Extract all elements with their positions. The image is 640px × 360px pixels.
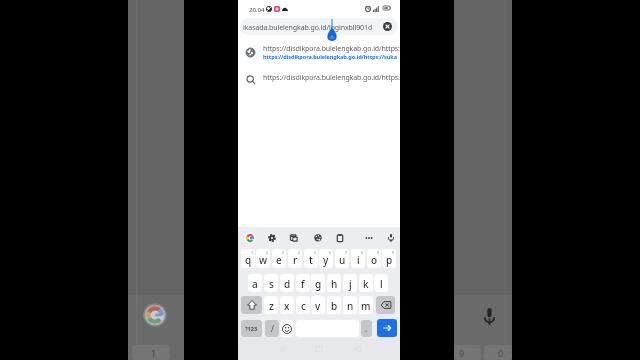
- staticText: https://disdikpora.bulelengkab.go.id/htt…: [263, 73, 400, 83]
- button[interactable]: https://disdikpora.bulelengkab.go.id/htt…: [238, 68, 400, 92]
- button[interactable]: 1: [241, 249, 255, 268]
- staticText: z: [269, 299, 274, 313]
- staticText: 0: [498, 347, 504, 359]
- button[interactable]: 6: [319, 249, 333, 268]
- staticText: r: [293, 253, 298, 267]
- staticText: v: [315, 299, 321, 313]
- button[interactable]: f: [296, 274, 310, 292]
- button[interactable]: d: [280, 274, 294, 292]
- button[interactable]: .: [361, 320, 372, 337]
- button[interactable]: Clear: [383, 22, 392, 31]
- staticText: 1: [151, 347, 157, 359]
- button[interactable]: k: [359, 274, 373, 292]
- button[interactable]: Recents: [275, 342, 289, 356]
- staticText: g: [315, 277, 322, 291]
- staticText: t: [309, 253, 313, 267]
- staticText: a: [252, 277, 258, 291]
- button[interactable]: Google: [244, 232, 256, 244]
- button[interactable]: x: [280, 296, 294, 314]
- staticText: e: [276, 253, 282, 267]
- staticText: s: [269, 277, 274, 291]
- button[interactable]: b: [327, 296, 341, 314]
- staticText: y: [323, 253, 329, 267]
- button[interactable]: 5: [304, 249, 318, 268]
- button[interactable]: l: [374, 274, 388, 292]
- button[interactable]: /: [265, 320, 279, 337]
- staticText: 6: [329, 250, 332, 255]
- staticText: k: [363, 277, 369, 291]
- button[interactable]: s: [264, 274, 278, 292]
- staticText: 7: [345, 250, 348, 255]
- button[interactable]: z: [264, 296, 278, 314]
- staticText: 3: [282, 250, 285, 255]
- button[interactable]: ?123: [241, 320, 262, 337]
- staticText: 20.04: [249, 6, 265, 14]
- button[interactable]: Emoji: [280, 320, 293, 337]
- button[interactable]: j: [343, 274, 357, 292]
- staticText: 9: [459, 347, 465, 359]
- staticText: b: [331, 299, 338, 313]
- staticText: m: [361, 299, 371, 313]
- button[interactable]: Translate: [288, 232, 300, 244]
- staticText: u: [339, 253, 346, 267]
- staticText: 4: [298, 250, 301, 255]
- staticText: o: [371, 253, 378, 267]
- staticText: https://disdikpora.bulelengkab.go.id/htt…: [263, 53, 397, 61]
- staticText: c: [301, 299, 306, 313]
- button[interactable]: Shift: [241, 296, 262, 314]
- staticText: 8: [361, 250, 364, 255]
- button[interactable]: 7: [335, 249, 349, 268]
- staticText: 5: [314, 250, 317, 255]
- staticText: /: [271, 323, 274, 334]
- button[interactable]: 4: [288, 249, 302, 268]
- button[interactable]: g: [311, 274, 325, 292]
- button[interactable]: c: [296, 296, 310, 314]
- button[interactable]: a: [248, 274, 262, 292]
- staticText: 9: [377, 250, 380, 255]
- button[interactable]: v: [311, 296, 325, 314]
- button[interactable]: 3: [272, 249, 286, 268]
- staticText: .: [365, 323, 368, 334]
- staticText: https://disdikpora.bulelengkab.go.id/htt…: [263, 44, 400, 54]
- button[interactable]: https://disdikpora.bulelengkab.go.id/htt…: [238, 40, 400, 65]
- staticText: f: [301, 277, 305, 291]
- button[interactable]: h: [327, 274, 341, 292]
- staticText: 2: [266, 250, 269, 255]
- staticText: w: [259, 253, 268, 267]
- button[interactable]: Voice input: [385, 232, 397, 244]
- staticText: q: [245, 253, 252, 267]
- staticText: i: [357, 253, 360, 267]
- staticText: x: [284, 299, 290, 313]
- button[interactable]: n: [343, 296, 357, 314]
- staticText: p: [386, 253, 393, 267]
- staticText: l: [380, 277, 383, 291]
- button[interactable]: Settings: [266, 232, 278, 244]
- button[interactable]: Stickers: [312, 232, 324, 244]
- button[interactable]: ikasada.bulelengkab.go.id/loginxbll901d: [240, 18, 398, 35]
- button[interactable]: More: [363, 232, 375, 244]
- button[interactable]: Clipboard: [334, 232, 346, 244]
- staticText: 1: [251, 250, 254, 255]
- button[interactable]: 9: [367, 249, 381, 268]
- staticText: 0: [392, 250, 395, 255]
- staticText: n: [347, 299, 354, 313]
- button[interactable]: Backspace: [376, 296, 395, 314]
- button[interactable]: 0: [382, 249, 396, 268]
- staticText: j: [349, 277, 352, 291]
- staticText: h: [331, 277, 338, 291]
- staticText: ikasada.bulelengkab.go.id/loginxbll901d: [243, 23, 373, 33]
- button[interactable]: Go: [377, 319, 397, 337]
- staticText: ?123: [245, 325, 258, 332]
- staticText: d: [284, 277, 291, 291]
- button[interactable]: m: [359, 296, 373, 314]
- button[interactable]: 8: [351, 249, 365, 268]
- button[interactable]: 2: [256, 249, 270, 268]
